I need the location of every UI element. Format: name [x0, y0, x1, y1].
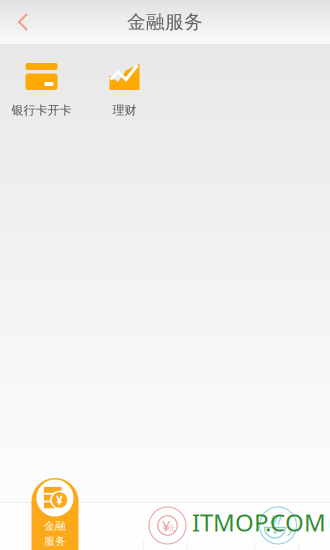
button[interactable]: ¥	[0, 502, 110, 550]
button[interactable]: 理财	[83, 44, 166, 127]
staticText: ¥	[162, 516, 170, 535]
staticText: 金融服务	[127, 10, 203, 33]
button[interactable]: Back	[0, 0, 46, 44]
staticText: 银行卡开卡	[11, 103, 71, 118]
button[interactable]: Life	[220, 502, 330, 550]
button[interactable]: Loans	[110, 502, 220, 550]
staticText: 理财	[112, 103, 136, 118]
staticText: 元	[168, 524, 175, 533]
staticText: ¥	[56, 492, 63, 508]
staticText: 金融	[44, 519, 66, 533]
staticText: 服务	[44, 535, 66, 548]
button[interactable]: 银行卡开卡	[0, 44, 83, 127]
staticText: ITMOP.COM	[192, 506, 326, 538]
